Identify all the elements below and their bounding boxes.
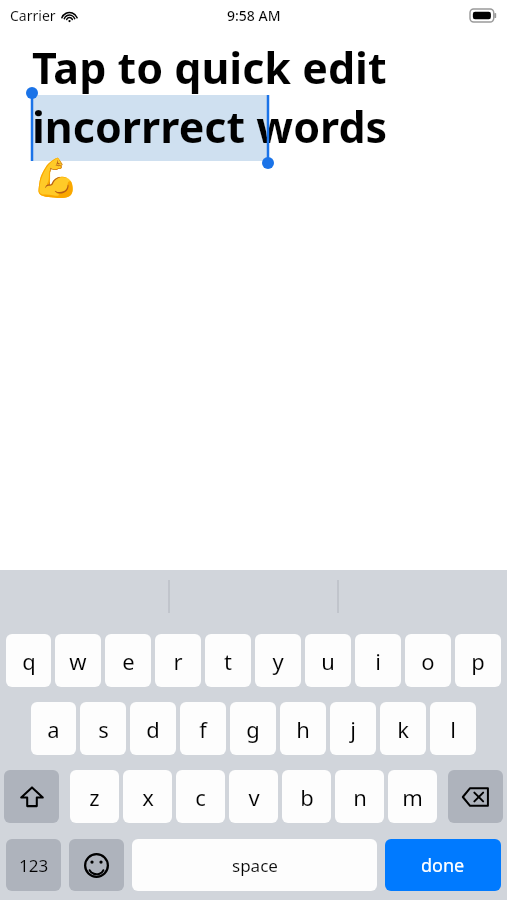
- staticText: z: [89, 782, 100, 812]
- staticText: p: [471, 646, 485, 676]
- staticText: r: [173, 646, 183, 676]
- button[interactable]: r: [155, 634, 201, 687]
- button[interactable]: c: [176, 770, 225, 823]
- staticText: k: [397, 714, 409, 744]
- staticText: 123: [19, 854, 49, 877]
- staticText: q: [22, 646, 36, 676]
- button[interactable]: s: [80, 702, 126, 755]
- button[interactable]: z: [70, 770, 119, 823]
- button[interactable]: d: [130, 702, 176, 755]
- button[interactable]: g: [230, 702, 276, 755]
- button[interactable]: Backspace: [448, 770, 503, 823]
- staticText: space: [232, 854, 278, 877]
- button[interactable]: space: [132, 839, 377, 891]
- button[interactable]: x: [123, 770, 172, 823]
- staticText: 💪: [32, 156, 80, 201]
- button[interactable]: t: [205, 634, 251, 687]
- staticText: v: [248, 782, 260, 812]
- button[interactable]: u: [305, 634, 351, 687]
- staticText: b: [300, 782, 314, 812]
- button[interactable]: w: [55, 634, 101, 687]
- staticText: Carrier: [10, 6, 56, 25]
- staticText: n: [353, 782, 367, 812]
- button[interactable]: Shift: [4, 770, 59, 823]
- button[interactable]: m: [388, 770, 437, 823]
- button[interactable]: a: [31, 702, 76, 755]
- staticText: e: [122, 646, 135, 676]
- staticText: g: [246, 714, 260, 744]
- staticText: f: [199, 714, 207, 744]
- button[interactable]: 123: [6, 839, 61, 891]
- button[interactable]: f: [180, 702, 226, 755]
- staticText: t: [224, 646, 232, 676]
- staticText: w: [69, 646, 87, 676]
- staticText: m: [402, 782, 423, 812]
- staticText: x: [142, 782, 154, 812]
- staticText: l: [450, 714, 456, 744]
- staticText: Tap to quick edit: [32, 38, 387, 97]
- button[interactable]: p: [455, 634, 501, 687]
- staticText: c: [195, 782, 206, 812]
- button[interactable]: b: [282, 770, 331, 823]
- button[interactable]: q: [6, 634, 51, 687]
- button[interactable]: e: [105, 634, 151, 687]
- staticText: done: [421, 853, 465, 878]
- staticText: s: [98, 714, 109, 744]
- button[interactable]: y: [255, 634, 301, 687]
- button[interactable]: j: [330, 702, 376, 755]
- staticText: a: [47, 714, 60, 744]
- button[interactable]: h: [280, 702, 326, 755]
- staticText: o: [421, 646, 435, 676]
- staticText: u: [321, 646, 335, 676]
- staticText: j: [350, 714, 356, 744]
- button[interactable]: v: [229, 770, 278, 823]
- staticText: y: [272, 646, 284, 676]
- button[interactable]: done: [385, 839, 501, 891]
- button[interactable]: o: [405, 634, 451, 687]
- button[interactable]: k: [380, 702, 426, 755]
- staticText: 9:58 AM: [227, 6, 281, 25]
- button[interactable]: Emoji: [69, 839, 124, 891]
- button[interactable]: n: [335, 770, 384, 823]
- staticText: h: [296, 714, 310, 744]
- staticText: incorrrect words: [32, 97, 388, 156]
- staticText: i: [375, 646, 381, 676]
- button[interactable]: l: [430, 702, 476, 755]
- button[interactable]: i: [355, 634, 401, 687]
- staticText: d: [146, 714, 160, 744]
